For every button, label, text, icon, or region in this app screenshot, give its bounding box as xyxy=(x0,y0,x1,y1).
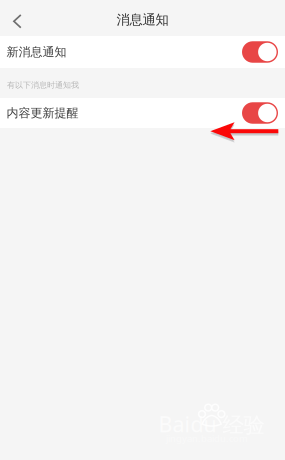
button[interactable]: 新消息通知 xyxy=(0,36,285,68)
staticText: 消息通知 xyxy=(116,12,168,28)
staticText: 有以下消息时通知我 xyxy=(7,80,79,90)
button[interactable]: 内容更新提醒 xyxy=(0,98,285,128)
button[interactable]: Back xyxy=(0,0,38,36)
staticText: 新消息通知 xyxy=(6,45,66,59)
staticText: 内容更新提醒 xyxy=(6,106,78,120)
